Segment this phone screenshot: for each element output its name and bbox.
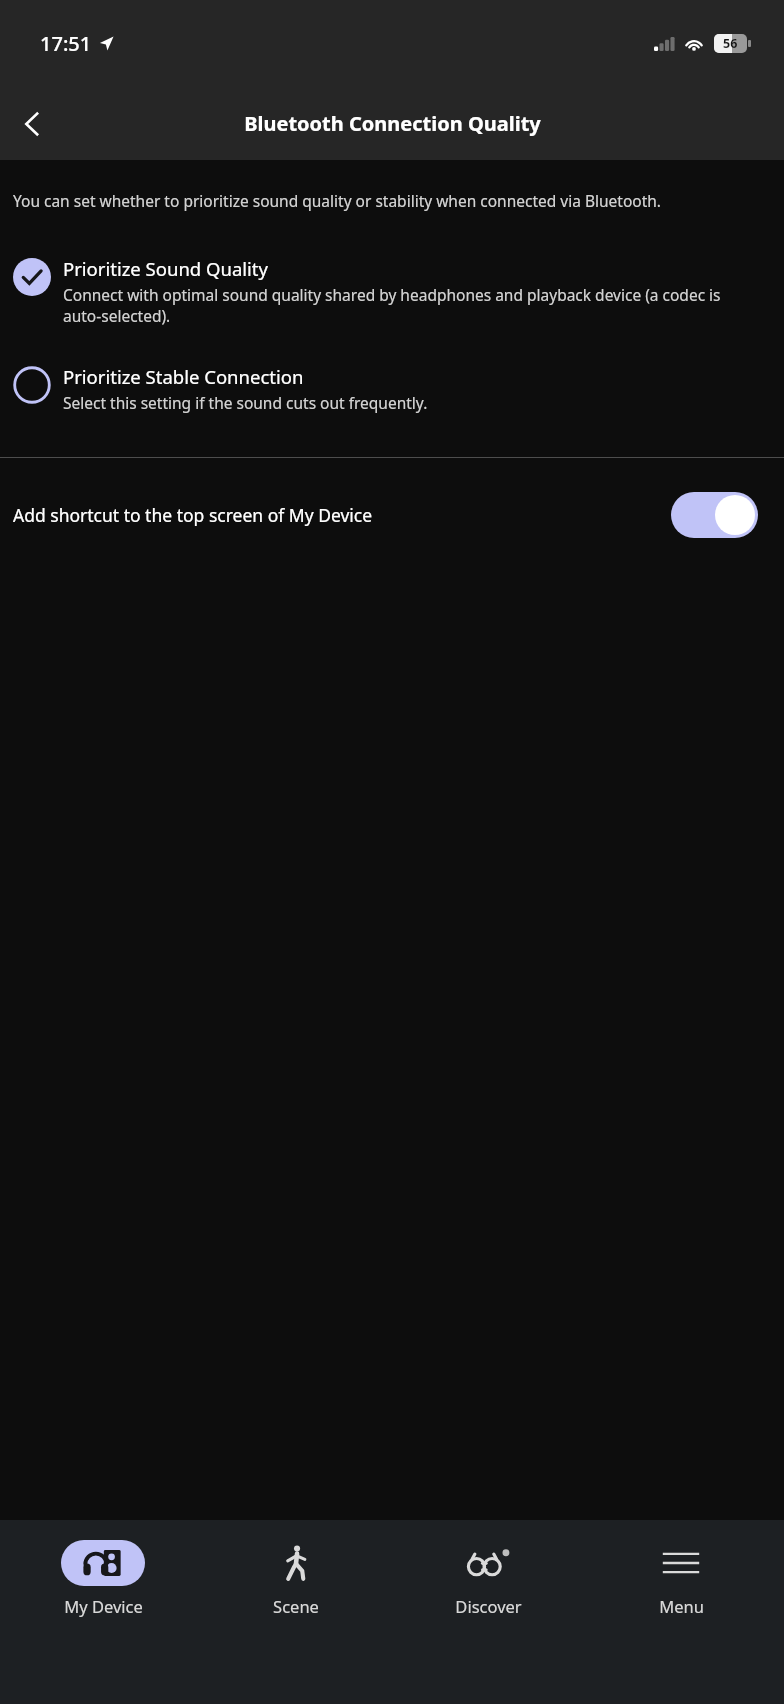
staticText: Prioritize Stable Connection	[63, 364, 304, 389]
staticText: 17:51	[40, 30, 92, 57]
staticText: You can set whether to prioritize sound …	[13, 190, 662, 211]
staticText: Prioritize Sound Quality	[63, 256, 268, 281]
button[interactable]: Prioritize Stable Connection	[0, 361, 784, 417]
staticText: Menu	[659, 1595, 704, 1617]
button[interactable]: Back	[0, 92, 64, 156]
staticText: Discover	[455, 1595, 522, 1617]
staticText: 56	[723, 35, 738, 52]
staticText: Scene	[273, 1595, 319, 1617]
staticText: Add shortcut to the top screen of My Dev…	[13, 503, 657, 527]
button[interactable]: My Device	[13, 1534, 193, 1617]
staticText: Connect with optimal sound quality share…	[63, 284, 762, 327]
staticText: My Device	[64, 1595, 143, 1617]
button[interactable]: Discover	[398, 1534, 578, 1617]
button[interactable]: Prioritize Sound Quality	[0, 253, 784, 331]
staticText: Bluetooth Connection Quality	[244, 110, 541, 137]
button[interactable]: Menu	[591, 1534, 771, 1617]
button[interactable]: Scene	[206, 1534, 386, 1617]
button[interactable]: Add shortcut to the top screen of My Dev…	[0, 458, 784, 572]
staticText: Select this setting if the sound cuts ou…	[63, 392, 428, 413]
